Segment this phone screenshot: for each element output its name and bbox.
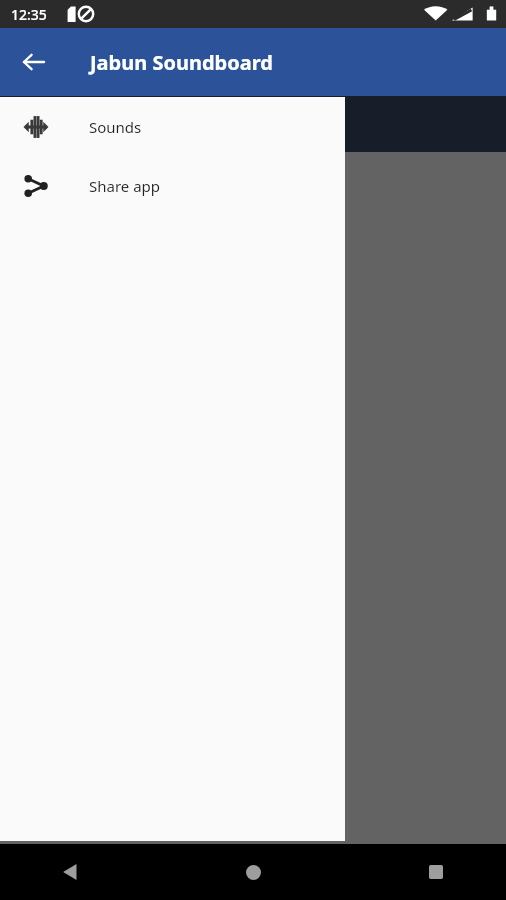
staticText: Sounds — [89, 117, 142, 137]
button[interactable]: Share app — [0, 156, 345, 215]
button[interactable]: Recent apps — [412, 848, 460, 896]
button[interactable]: Back — [10, 38, 58, 86]
staticText: Share app — [89, 176, 161, 196]
staticText: Jabun Soundboard — [90, 49, 273, 76]
button[interactable]: Back — [46, 848, 94, 896]
button[interactable]: Sounds — [0, 97, 345, 156]
button[interactable]: Home — [229, 848, 277, 896]
staticText: 12:35 — [11, 5, 47, 24]
button[interactable] — [0, 96, 506, 152]
button[interactable]: 2 — [8, 159, 128, 287]
